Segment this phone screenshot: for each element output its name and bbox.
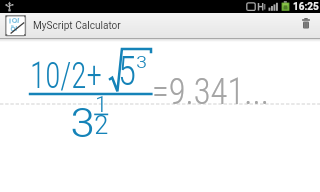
staticText: 16:25 (293, 1, 319, 13)
button[interactable] (296, 15, 318, 37)
staticText: MyScript Calculator (33, 19, 121, 31)
staticText: 10/2+ (30, 55, 103, 97)
staticText: 2 (94, 111, 110, 140)
staticText: 1 (95, 92, 108, 118)
button[interactable] (5, 15, 26, 36)
staticText: 5 (118, 48, 137, 95)
staticText: =9.341... (152, 71, 269, 113)
staticText: 3 (136, 52, 148, 72)
staticText: 3 (70, 100, 96, 147)
